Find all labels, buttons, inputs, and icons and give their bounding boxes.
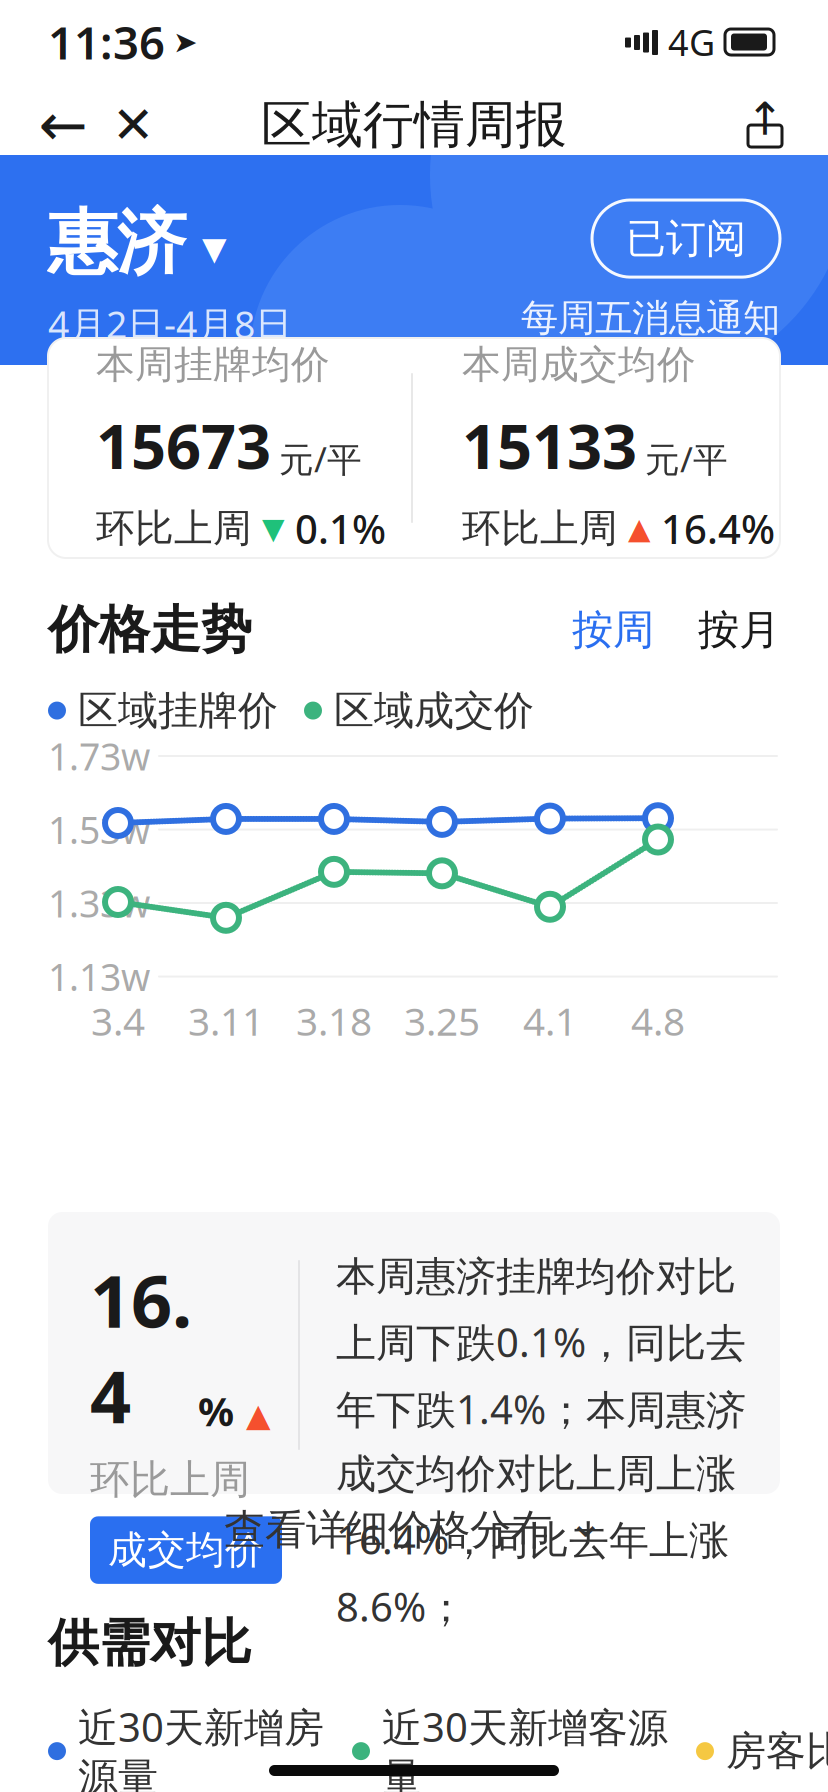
staticText: 按月 — [698, 605, 780, 655]
staticText: 每周五消息通知 — [521, 295, 780, 341]
staticText: ↑ — [746, 93, 784, 145]
button[interactable]: 成交均价 — [90, 1516, 282, 1584]
staticText: 本周挂牌均价 — [96, 341, 330, 388]
staticText: 15673 — [96, 404, 271, 486]
staticText: 近30天新增房源量 — [78, 1700, 324, 1792]
staticText: 区域行情周报 — [261, 94, 567, 156]
staticText: 元/平 — [645, 436, 728, 482]
staticText: ▼ — [262, 512, 285, 545]
staticText: 区域成交价 — [334, 686, 534, 735]
staticText: 15133 — [462, 404, 637, 486]
staticText: 本周成交均价 — [462, 341, 696, 388]
staticText: 按周 — [572, 605, 654, 655]
staticText: 已订阅 — [626, 214, 746, 263]
staticText: 成交均价 — [108, 1526, 264, 1574]
staticText: 近30天新增客源量 — [382, 1700, 668, 1792]
staticText: 1.73w — [48, 731, 150, 781]
staticText: 4.8 — [631, 995, 685, 1046]
staticText: 惠济 — [48, 200, 186, 285]
staticText: ▲ — [246, 1397, 271, 1433]
staticText: 本周惠济挂牌均价对比上周下跌0.1%，同比去年下跌1.4%；本周惠济成交均价对比… — [336, 1252, 746, 1633]
staticText: 环比上周 — [462, 505, 618, 552]
button[interactable]: 查看详细价格分布 — [0, 1495, 828, 1565]
staticText: ▼ — [202, 230, 227, 267]
staticText: 1.13w — [48, 952, 150, 1001]
staticText: ⌄ — [568, 1498, 604, 1546]
staticText: 供需对比 — [48, 1612, 252, 1674]
staticText: ← — [38, 92, 87, 158]
button[interactable]: Back — [28, 90, 98, 160]
staticText: 16.4% — [661, 502, 775, 555]
staticText: 房客比 — [726, 1727, 828, 1776]
staticText: 1.53w — [48, 805, 150, 854]
staticText: 3.4 — [91, 995, 145, 1046]
button[interactable]: 按月 — [654, 605, 780, 655]
staticText: 环比上周 — [90, 1455, 250, 1504]
staticText: ➤ — [173, 25, 198, 59]
staticText: 4.1 — [523, 995, 577, 1046]
staticText: % — [198, 1384, 234, 1437]
staticText: 3.18 — [296, 995, 372, 1046]
staticText: 16.4 — [90, 1252, 192, 1443]
button[interactable]: 惠济 — [48, 200, 227, 285]
staticText: 元/平 — [279, 436, 362, 482]
staticText: ▲ — [628, 512, 651, 545]
staticText: 环比上周 — [96, 505, 252, 552]
staticText: 区域挂牌价 — [78, 686, 278, 735]
staticText: ✕ — [112, 96, 154, 154]
staticText: 3.11 — [188, 995, 264, 1046]
staticText: 11:36 — [48, 12, 165, 72]
staticText: 3.25 — [404, 995, 480, 1046]
staticText: 查看详细价格分布 — [224, 1505, 552, 1555]
staticText: 价格走势 — [48, 599, 252, 661]
button[interactable]: 按周 — [572, 605, 654, 655]
staticText: 4G — [668, 18, 715, 66]
button[interactable]: Share — [730, 90, 800, 160]
button[interactable]: 已订阅 — [592, 200, 780, 277]
staticText: 1.33w — [48, 878, 150, 928]
staticText: 0.1% — [295, 502, 386, 555]
staticText: 4月2日-4月8日 — [48, 299, 292, 349]
button[interactable]: Close — [98, 90, 168, 160]
